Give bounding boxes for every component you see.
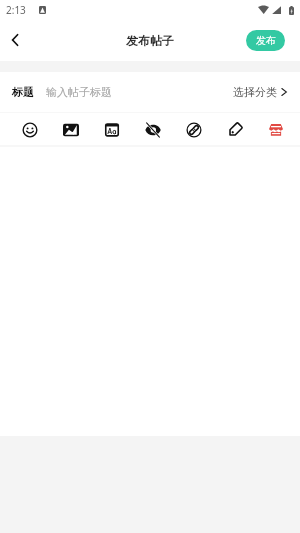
staticText: 2:13 — [6, 3, 26, 17]
button[interactable]: Shop — [262, 116, 289, 143]
button[interactable]: Image — [57, 116, 84, 143]
staticText: 选择分类 — [233, 85, 277, 99]
button[interactable]: Link — [180, 116, 207, 143]
button[interactable]: Hide — [139, 116, 166, 143]
button[interactable]: 选择分类 — [233, 85, 287, 99]
staticText: 发布帖子 — [126, 33, 174, 48]
button[interactable]: 标题 — [12, 85, 233, 99]
button[interactable]: 发布 — [246, 30, 285, 51]
button[interactable]: Emoji — [16, 116, 43, 143]
button[interactable]: Tag — [221, 116, 248, 143]
staticText: 发布 — [256, 34, 276, 47]
button[interactable]: Back — [2, 27, 28, 53]
staticText: 输入帖子标题 — [46, 85, 112, 99]
button[interactable]: Text style — [98, 116, 125, 143]
staticText: 标题 — [12, 85, 34, 99]
